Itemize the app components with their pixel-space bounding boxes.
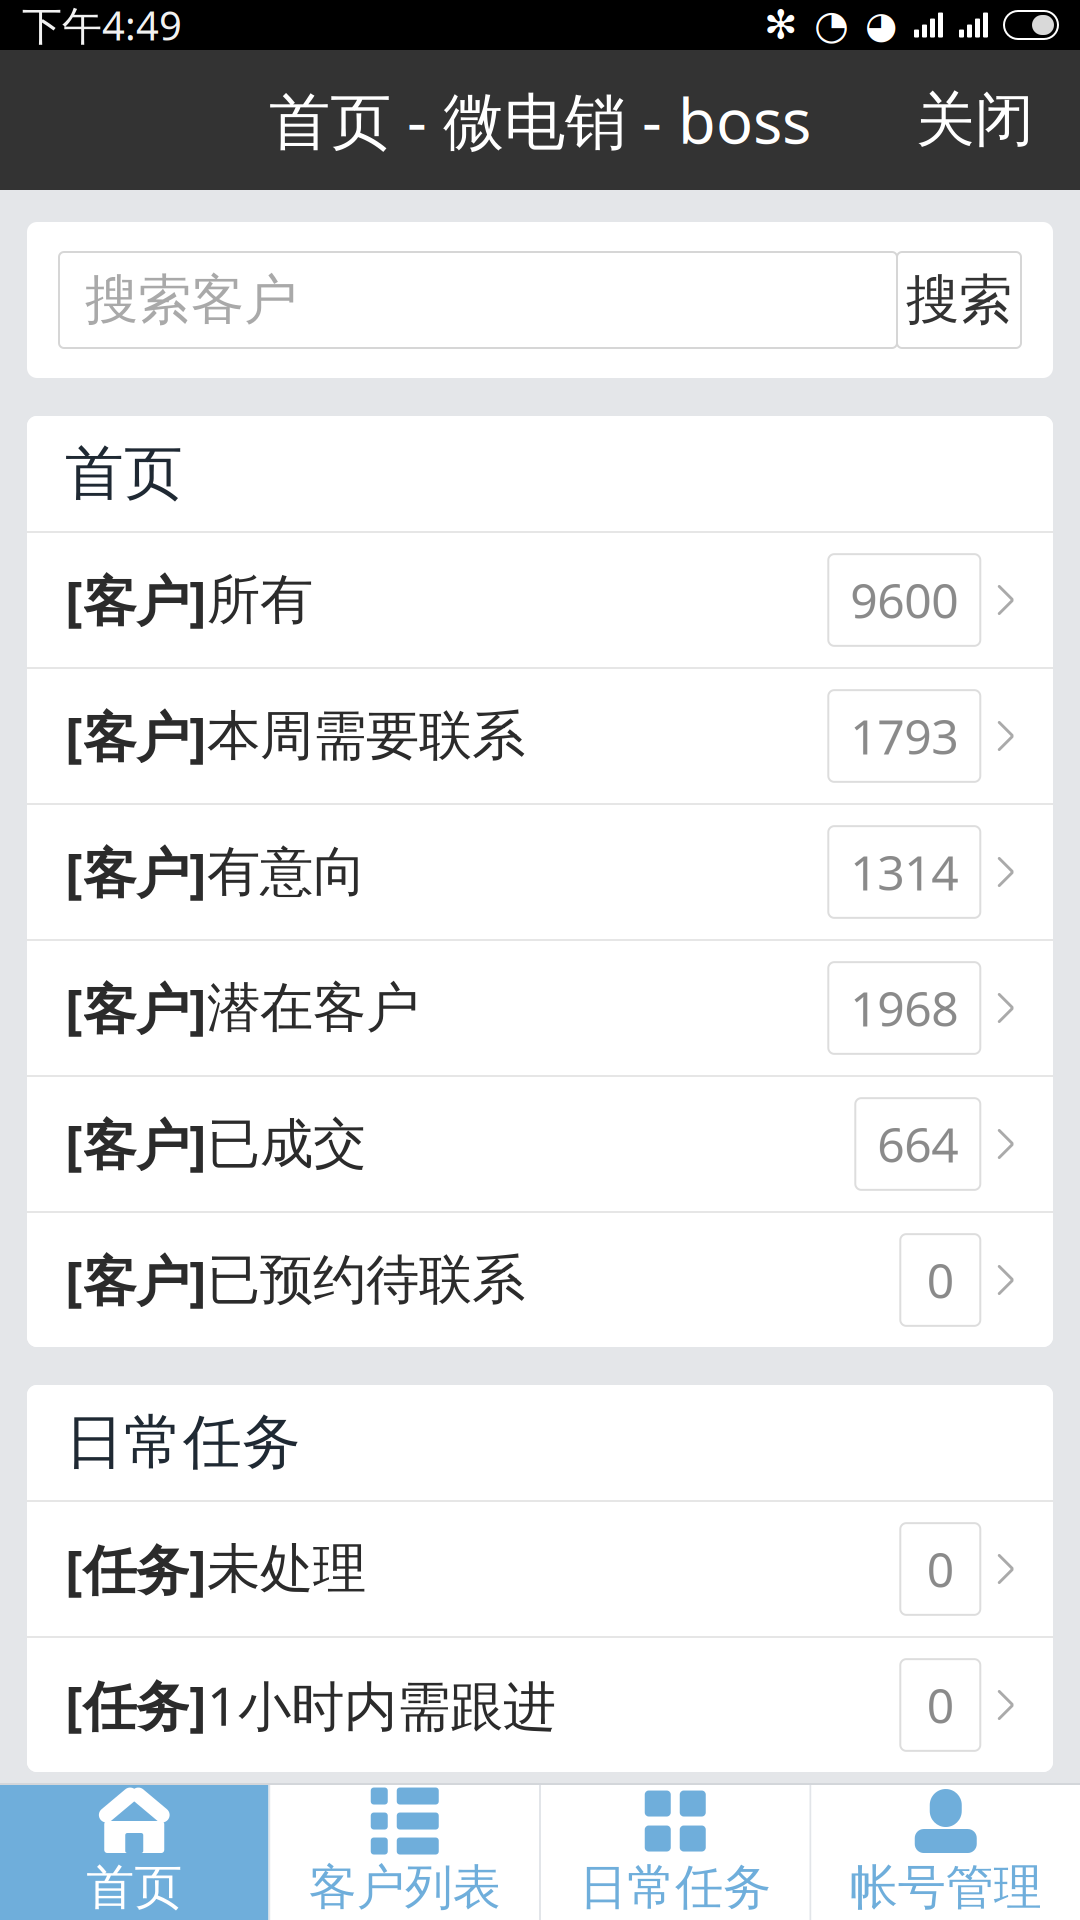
button[interactable]: 首页 (0, 1785, 268, 1920)
staticText: ✻ (764, 2, 798, 48)
staticText: 664 (877, 1112, 958, 1176)
staticText: 0 (927, 1248, 954, 1312)
staticText: [客户] (65, 1245, 207, 1315)
staticText: 本周需要联系 (207, 703, 525, 769)
staticText: 1小时内需跟进 (207, 1670, 556, 1740)
button[interactable]: [客户] (27, 533, 1053, 667)
button[interactable]: [任务] (27, 1638, 1053, 1772)
staticText: 首页 (86, 1858, 182, 1917)
staticText: 所有 (207, 567, 313, 633)
staticText: [客户] (65, 1109, 207, 1179)
staticText: 下午4:49 (22, 0, 182, 51)
staticText: 1314 (850, 840, 958, 904)
staticText: 潜在客户 (207, 975, 419, 1041)
staticText: 0 (927, 1673, 954, 1737)
staticText: 有意向 (207, 839, 366, 905)
staticText: 已预约待联系 (207, 1247, 525, 1313)
button[interactable]: 客户列表 (270, 1785, 539, 1920)
staticText: 已成交 (207, 1111, 366, 1177)
button[interactable]: [客户] (27, 805, 1053, 939)
staticText: 未处理 (207, 1536, 366, 1602)
staticText: 首页 - 微电销 - boss (269, 79, 811, 161)
staticText: 搜索客户 (85, 267, 297, 333)
staticText: 1968 (850, 976, 958, 1040)
button[interactable]: 帐号管理 (811, 1785, 1080, 1920)
staticText: [任务] (65, 1534, 207, 1604)
button[interactable]: 日常任务 (541, 1785, 809, 1920)
staticText: [客户] (65, 701, 207, 771)
staticText: 9600 (850, 568, 958, 632)
staticText: 首页 (65, 437, 183, 510)
button[interactable]: 搜索客户 (59, 252, 897, 348)
staticText: [客户] (65, 973, 207, 1043)
staticText: 1793 (850, 704, 958, 768)
staticText: 日常任务 (579, 1858, 771, 1917)
staticText: ◕ (865, 4, 898, 46)
button[interactable]: [客户] (27, 941, 1053, 1075)
staticText: ◔ (814, 2, 849, 48)
staticText: 客户列表 (309, 1858, 501, 1917)
button[interactable]: 搜索 (897, 252, 1021, 348)
staticText: 日常任务 (65, 1406, 301, 1479)
button[interactable]: 关闭 (886, 62, 1064, 178)
button[interactable]: [客户] (27, 1077, 1053, 1211)
staticText: 0 (927, 1537, 954, 1601)
staticText: 搜索 (906, 267, 1012, 333)
button[interactable]: [任务] (27, 1502, 1053, 1636)
staticText: [任务] (65, 1670, 207, 1740)
staticText: [客户] (65, 837, 207, 907)
staticText: 关闭 (916, 84, 1034, 156)
button[interactable]: [客户] (27, 1213, 1053, 1347)
button[interactable]: [客户] (27, 669, 1053, 803)
staticText: [客户] (65, 565, 207, 635)
staticText: 帐号管理 (850, 1858, 1042, 1917)
